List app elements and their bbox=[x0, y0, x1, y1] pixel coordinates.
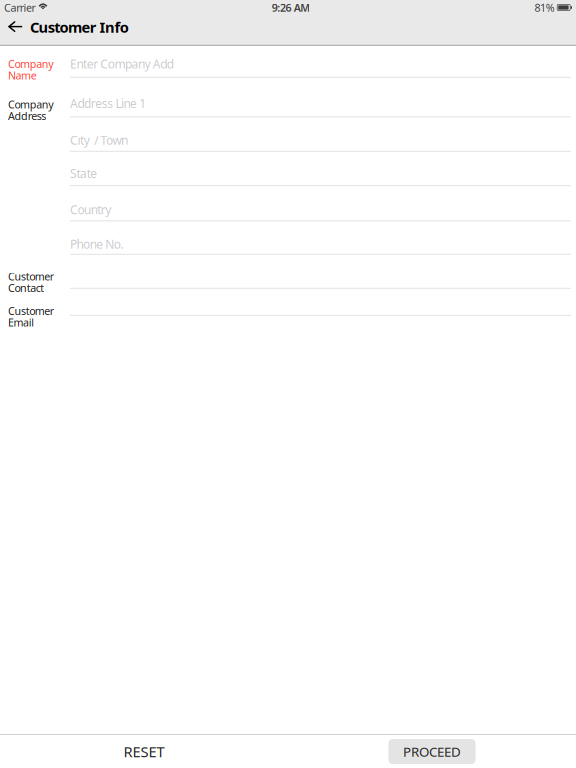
staticText: 81% bbox=[534, 0, 555, 15]
staticText: RESET bbox=[123, 742, 164, 761]
staticText: PROCEED bbox=[403, 743, 461, 760]
staticText: Customer bbox=[8, 304, 54, 318]
button[interactable]: PROCEED bbox=[388, 739, 475, 764]
staticText: Name bbox=[8, 68, 37, 82]
staticText: State bbox=[70, 165, 97, 181]
staticText: Customer Info bbox=[30, 17, 129, 37]
button[interactable]: Back bbox=[0, 14, 30, 40]
staticText: Address bbox=[8, 109, 46, 123]
staticText: Company bbox=[8, 97, 53, 111]
button[interactable]: Customer Info bbox=[30, 14, 129, 40]
staticText: 9:26 AM bbox=[272, 0, 310, 15]
staticText: Customer bbox=[8, 269, 54, 284]
staticText: Enter Company Add bbox=[70, 56, 174, 72]
staticText: Phone No. bbox=[70, 236, 123, 252]
button[interactable]: RESET bbox=[0, 735, 288, 768]
staticText: Carrier bbox=[4, 0, 36, 15]
staticText: Address Line 1 bbox=[70, 95, 146, 111]
staticText: City / Town bbox=[70, 132, 128, 148]
staticText: Email bbox=[8, 315, 34, 329]
staticText: Company bbox=[8, 57, 53, 71]
staticText: Contact bbox=[8, 281, 44, 295]
staticText: Country bbox=[70, 201, 111, 217]
